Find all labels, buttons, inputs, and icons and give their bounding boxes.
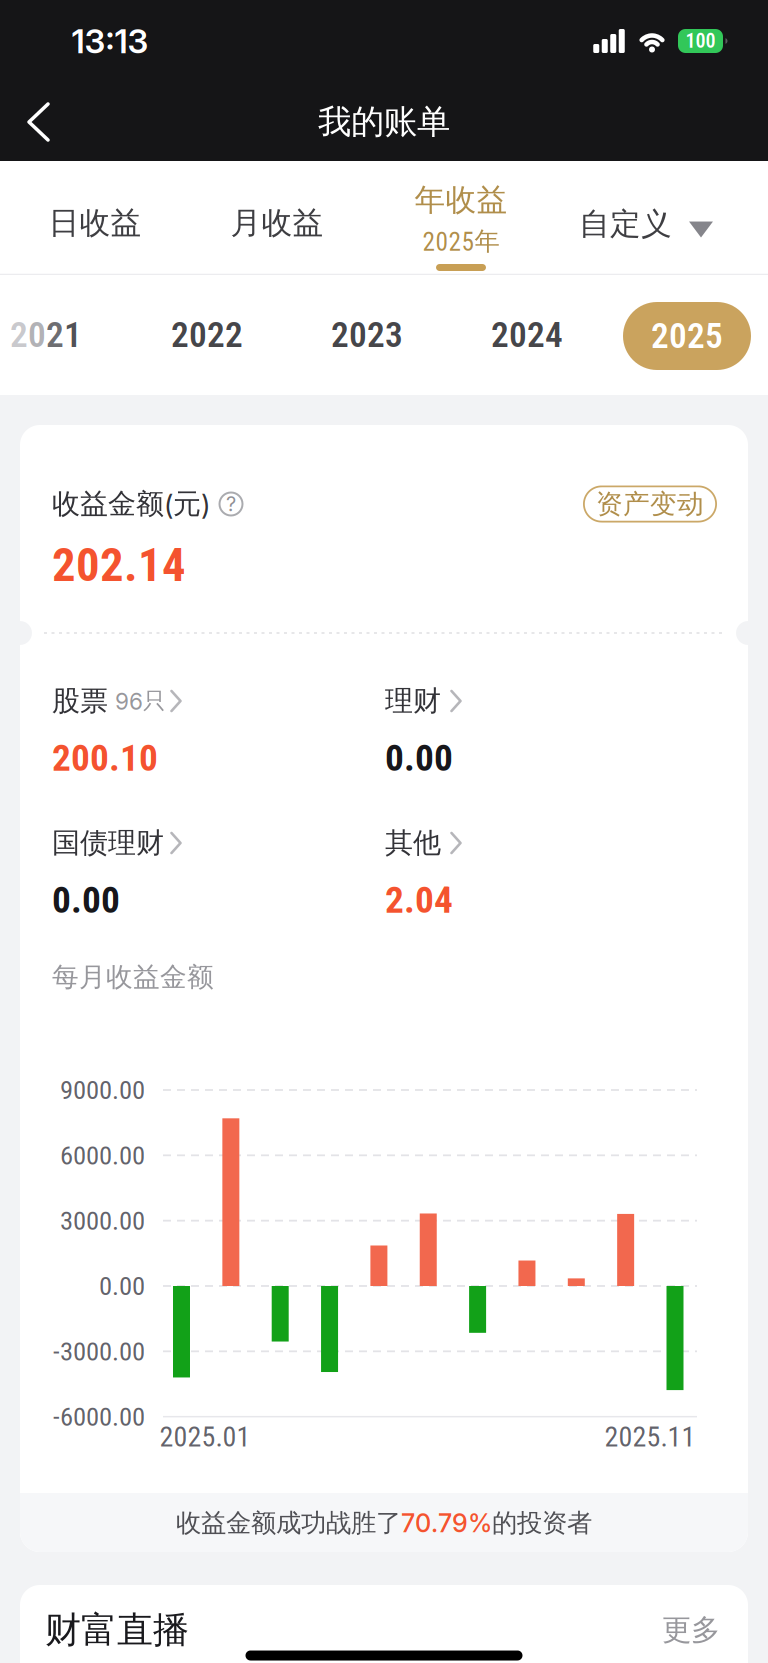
staticText: 0.00 bbox=[99, 1270, 145, 1302]
button[interactable]: 其他 bbox=[385, 815, 445, 871]
button[interactable]: 国债理财 bbox=[52, 815, 170, 871]
staticText: -3000.00 bbox=[53, 1336, 145, 1367]
staticText: 收益金额成功战胜了 bbox=[176, 1507, 401, 1539]
staticText: 96只 bbox=[115, 687, 166, 715]
button[interactable]: 2024 bbox=[462, 290, 592, 380]
staticText: 财富直播 bbox=[45, 1607, 189, 1653]
staticText: 国债理财 bbox=[52, 825, 164, 861]
button[interactable]: 月收益 bbox=[202, 173, 352, 273]
staticText: 的投资者 bbox=[492, 1507, 592, 1539]
staticText: 其他 bbox=[385, 825, 441, 861]
button[interactable]: 资产变动 bbox=[583, 485, 717, 522]
staticText: 2 bbox=[46, 314, 64, 356]
staticText: 资产变动 bbox=[596, 487, 704, 521]
staticText: 2022 bbox=[171, 314, 243, 356]
staticText: 13:13 bbox=[71, 21, 148, 61]
button[interactable]: 理财 bbox=[385, 673, 445, 729]
staticText: 200.10 bbox=[52, 736, 158, 780]
staticText: 3000.00 bbox=[60, 1205, 145, 1236]
button[interactable]: 2 bbox=[0, 290, 101, 380]
staticText: 股票 bbox=[52, 683, 108, 719]
staticText: 0.00 bbox=[52, 878, 120, 922]
staticText: 70.79% bbox=[401, 1508, 492, 1538]
staticText: 2025.01 bbox=[159, 1421, 250, 1453]
staticText: 0 bbox=[28, 314, 46, 356]
button[interactable]: 股票 bbox=[52, 673, 182, 729]
staticText: 9000.00 bbox=[60, 1074, 145, 1106]
staticText: 每月收益金额 bbox=[52, 960, 214, 994]
staticText: 2 bbox=[10, 314, 28, 356]
staticText: 收益金额(元) bbox=[52, 486, 210, 522]
staticText: 1 bbox=[64, 314, 82, 356]
staticText: 2023 bbox=[331, 314, 403, 356]
staticText: 100 bbox=[685, 29, 715, 53]
staticText: 0.00 bbox=[385, 736, 453, 780]
staticText: 日收益 bbox=[48, 204, 141, 242]
staticText: 202.14 bbox=[52, 538, 186, 592]
staticText: 2025.11 bbox=[604, 1421, 695, 1453]
staticText: 自定义 bbox=[579, 205, 672, 243]
button[interactable]: 收益金额说明 bbox=[209, 482, 253, 526]
button[interactable]: 自定义 bbox=[551, 174, 741, 274]
staticText: 2025年 bbox=[422, 225, 499, 257]
staticText: 理财 bbox=[385, 683, 441, 719]
staticText: 2024 bbox=[491, 314, 563, 356]
staticText: ? bbox=[226, 492, 236, 516]
button[interactable]: 2022 bbox=[142, 290, 272, 380]
staticText: 我的账单 bbox=[318, 101, 450, 143]
staticText: 更多 bbox=[662, 1611, 720, 1648]
button[interactable]: 更多 bbox=[636, 1595, 746, 1663]
staticText: 2.04 bbox=[385, 878, 453, 922]
button[interactable]: 年收益 bbox=[381, 167, 541, 271]
button[interactable]: 2025 bbox=[623, 302, 751, 370]
button[interactable]: Back bbox=[8, 92, 68, 152]
button[interactable]: 2023 bbox=[302, 290, 432, 380]
staticText: 年收益 bbox=[414, 181, 507, 219]
staticText: 6000.00 bbox=[60, 1140, 145, 1171]
staticText: 月收益 bbox=[230, 204, 323, 242]
button[interactable]: 日收益 bbox=[20, 173, 170, 273]
staticText: -6000.00 bbox=[53, 1401, 145, 1432]
staticText: 2025 bbox=[651, 315, 723, 357]
